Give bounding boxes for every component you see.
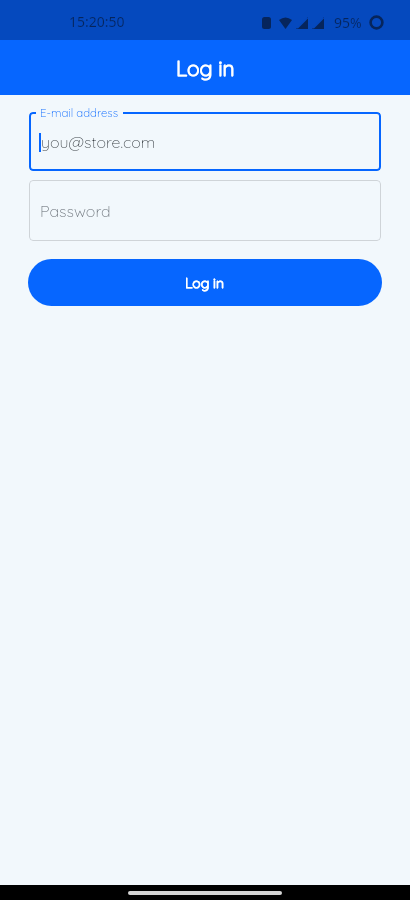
- button[interactable]: Log in: [28, 259, 382, 306]
- staticText: 15:20:50: [69, 12, 125, 31]
- staticText: Log in: [176, 55, 235, 81]
- staticText: Log in: [176, 55, 235, 81]
- other: Home: [128, 891, 282, 895]
- staticText: 95%: [334, 13, 362, 32]
- button[interactable]: you@store.com: [29, 112, 381, 171]
- button[interactable]: Password: [29, 180, 381, 241]
- staticText: Log in: [185, 274, 225, 292]
- staticText: Log in: [185, 274, 225, 292]
- staticText: E-mail address: [40, 105, 119, 119]
- button[interactable]: Log in: [0, 40, 410, 95]
- staticText: you@store.com: [41, 132, 156, 152]
- staticText: Password: [40, 201, 111, 221]
